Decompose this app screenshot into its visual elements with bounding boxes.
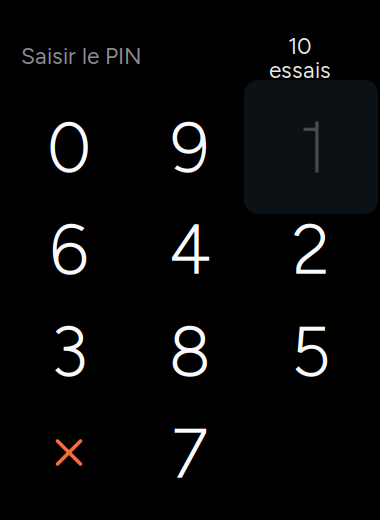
button[interactable]: 9 [129, 96, 250, 198]
button[interactable]: 7 [129, 402, 250, 504]
button[interactable]: 0 [8, 96, 129, 198]
staticText: 2 [292, 208, 330, 291]
staticText: Saisir le PIN [21, 42, 142, 70]
button[interactable]: 3 [8, 300, 129, 402]
button[interactable]: 4 [129, 198, 250, 300]
button[interactable]: Effacer [8, 401, 129, 503]
button[interactable]: 6 [8, 198, 129, 300]
staticText: 7 [171, 412, 208, 495]
button[interactable]: 2 [250, 198, 371, 300]
staticText: 6 [49, 208, 88, 291]
staticText: essais [269, 56, 331, 84]
staticText: 9 [170, 106, 209, 189]
staticText: 3 [50, 310, 87, 393]
staticText: 10 [288, 32, 312, 60]
button[interactable]: 1 [250, 96, 371, 198]
staticText: 0 [47, 106, 91, 189]
staticText: 5 [291, 310, 331, 393]
staticText: 8 [168, 310, 211, 393]
button[interactable]: 8 [129, 300, 250, 402]
staticText: 4 [168, 208, 211, 291]
button[interactable]: 5 [250, 300, 371, 402]
